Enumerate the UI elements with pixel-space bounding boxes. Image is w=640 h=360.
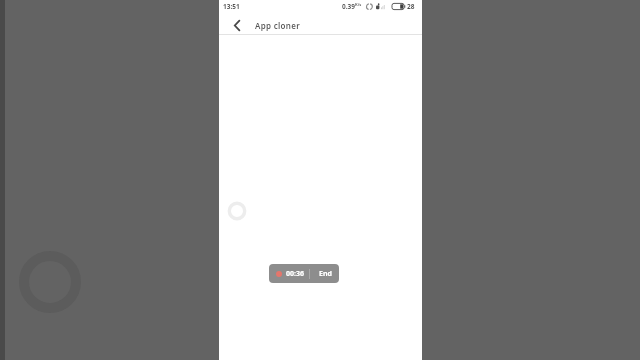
button[interactable] — [226, 14, 248, 36]
button[interactable]: 00:36 — [269, 264, 339, 283]
staticText: 0.39 — [342, 2, 355, 11]
staticText: App cloner — [255, 20, 300, 31]
staticText: K/s — [355, 2, 362, 7]
staticText: 13:51 — [223, 2, 240, 11]
staticText: 28 — [407, 2, 415, 11]
staticText: End — [319, 269, 332, 279]
staticText: 00:36 — [286, 269, 304, 279]
button[interactable]: End — [319, 269, 332, 279]
